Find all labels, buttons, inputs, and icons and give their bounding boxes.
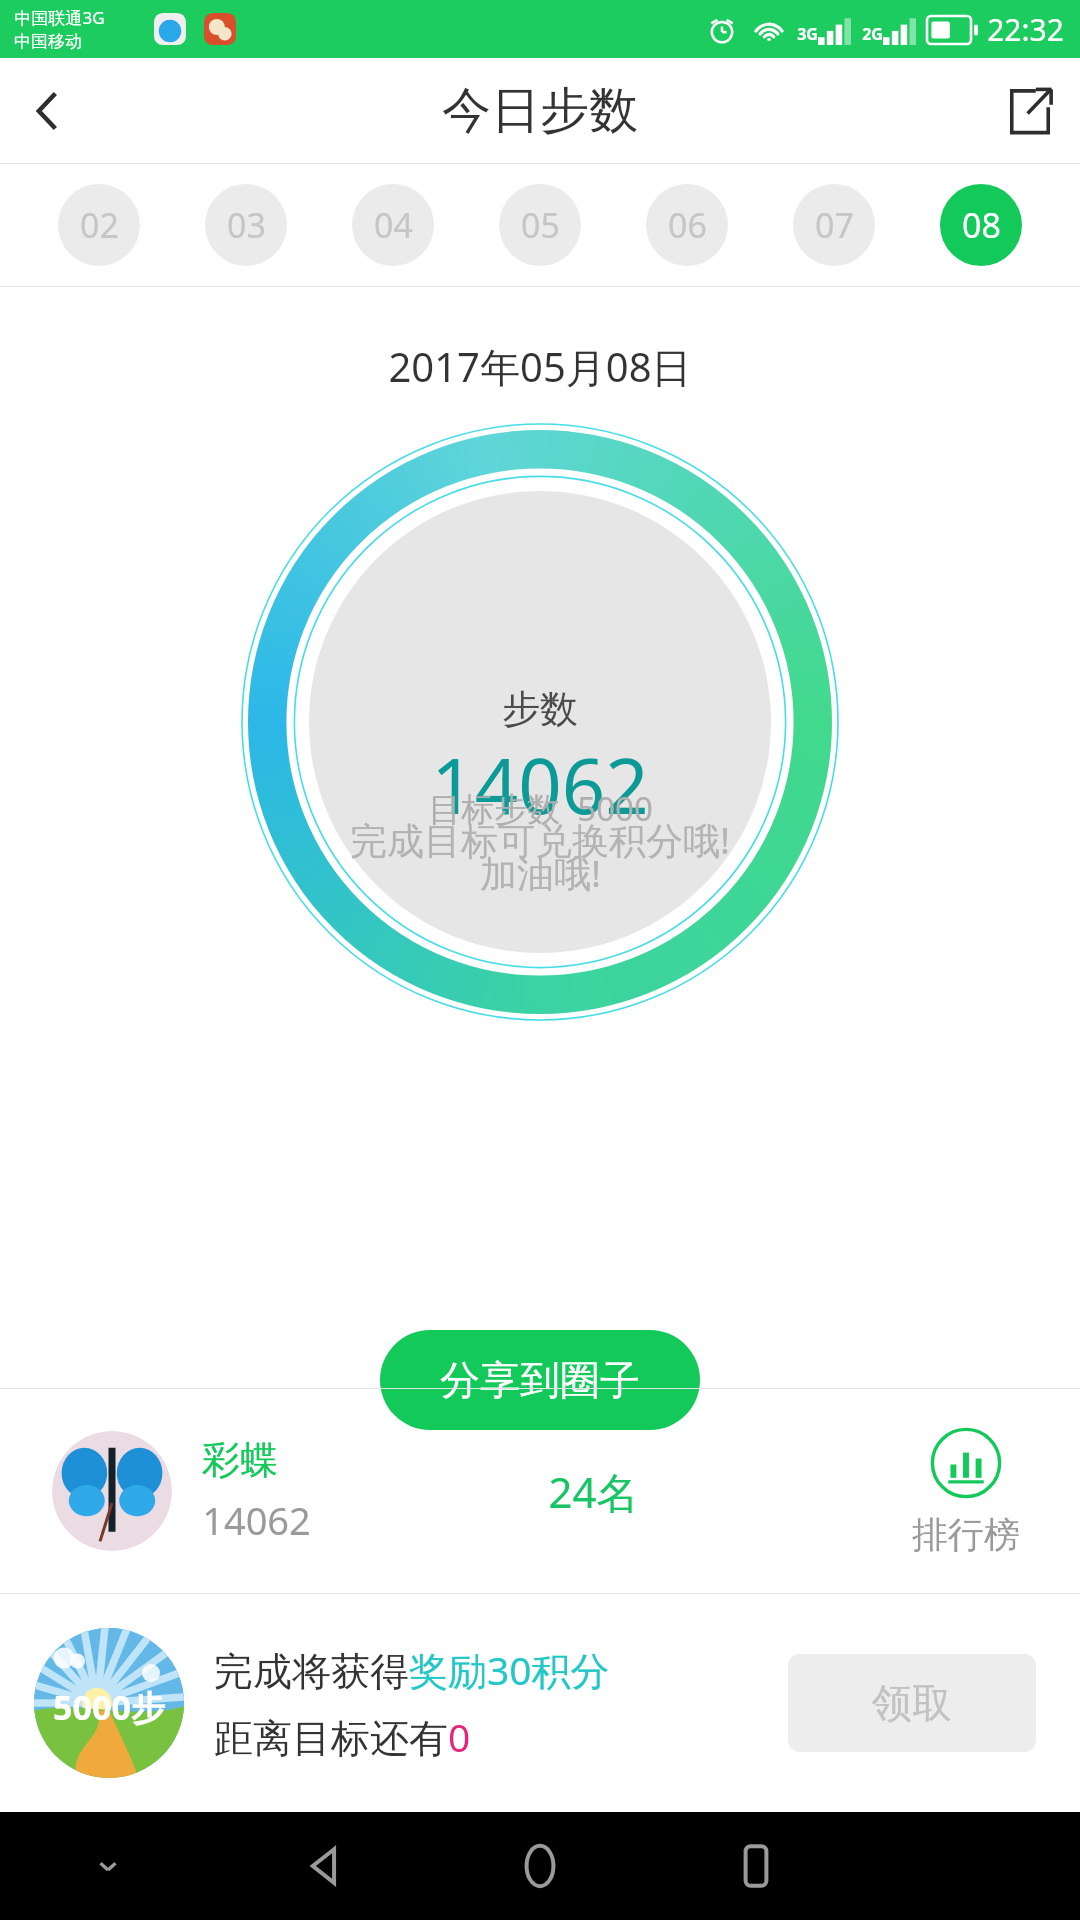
button[interactable]: 02	[58, 184, 140, 266]
staticText: 08	[962, 202, 1001, 248]
staticText: 中国移动	[14, 31, 82, 52]
staticText: 07	[815, 202, 854, 248]
staticText: 目标步数 5000	[428, 786, 653, 831]
button[interactable]: Home	[432, 1812, 648, 1920]
staticText: 分享到圈子	[440, 1355, 640, 1405]
button[interactable]: 04	[352, 184, 434, 266]
button[interactable]: 08	[940, 184, 1022, 266]
button[interactable]: Recent apps	[648, 1812, 864, 1920]
staticText: 06	[668, 202, 707, 248]
staticText: 22:32	[987, 9, 1064, 50]
staticText: 05	[521, 202, 560, 248]
button[interactable]: 03	[205, 184, 287, 266]
button[interactable]: 排行榜	[900, 1426, 1032, 1557]
staticText: 今日步数	[442, 80, 638, 142]
staticText: 2G	[862, 23, 883, 45]
button[interactable]: Back	[0, 63, 96, 159]
staticText: 14062	[431, 733, 649, 837]
button[interactable]: 彩蝶	[0, 1389, 1080, 1593]
staticText: 距离目标还有0	[214, 1710, 471, 1763]
staticText: 完成将获得奖励30积分	[214, 1643, 610, 1696]
staticText: 3G	[797, 23, 818, 45]
button[interactable]: 07	[793, 184, 875, 266]
staticText: 完成目标可兑换积分哦!	[350, 814, 730, 865]
staticText: 14062	[202, 1494, 311, 1546]
button[interactable]: 分享到圈子	[380, 1330, 700, 1430]
staticText: 中国联通3G	[14, 6, 105, 29]
staticText: 5000步	[53, 1684, 165, 1730]
staticText: 加油哦!	[480, 847, 601, 898]
button[interactable]: 06	[646, 184, 728, 266]
staticText: 03	[227, 202, 266, 248]
staticText: 排行榜	[912, 1512, 1020, 1557]
staticText: 04	[374, 202, 413, 248]
button[interactable]: Share	[980, 61, 1080, 161]
staticText: 步数	[502, 685, 578, 733]
button[interactable]: Back	[216, 1812, 432, 1920]
staticText: 02	[80, 202, 119, 248]
staticText: 2017年05月08日	[388, 339, 692, 394]
staticText: 24名	[548, 1463, 639, 1520]
button[interactable]: 领取	[788, 1654, 1036, 1752]
staticText: 领取	[872, 1678, 952, 1728]
button[interactable]: 05	[499, 184, 581, 266]
button[interactable]: Hide keyboard	[0, 1812, 216, 1920]
staticText: 彩蝶	[202, 1436, 278, 1484]
